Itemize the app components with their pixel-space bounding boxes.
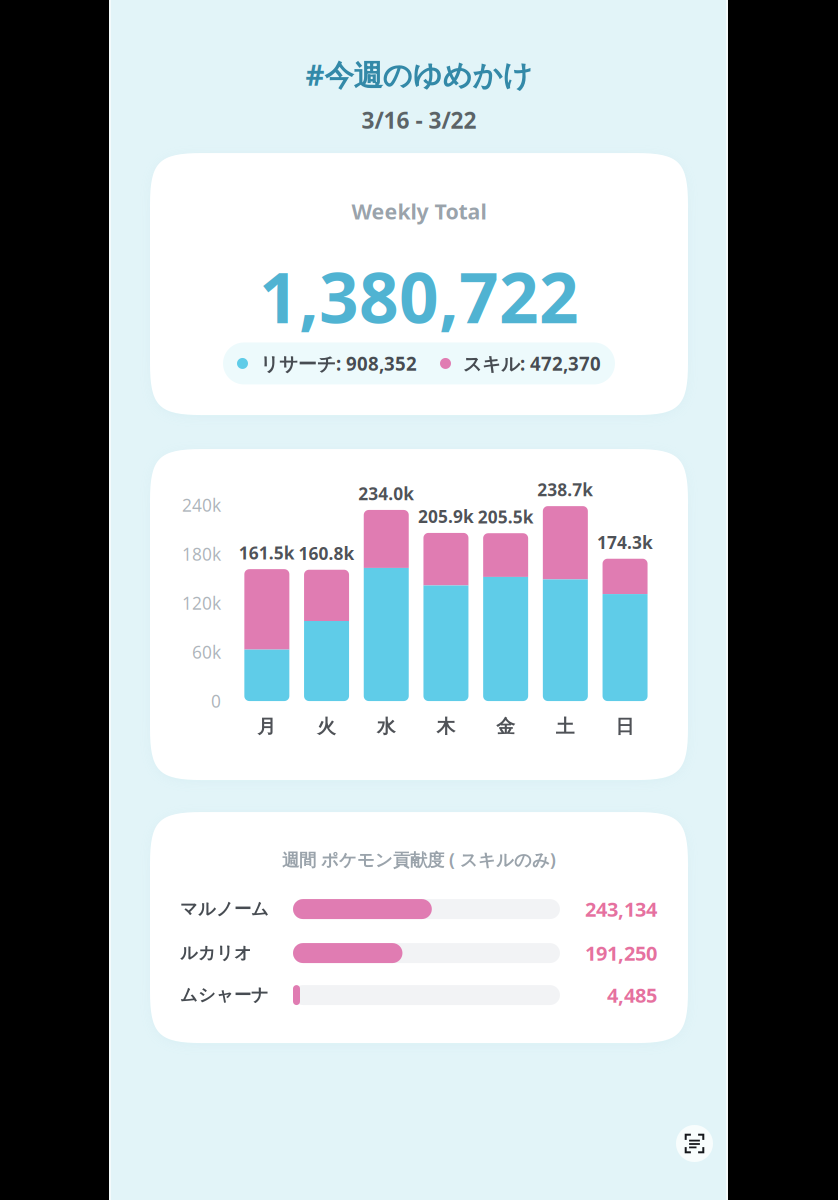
- staticText: 土: [556, 715, 575, 738]
- staticText: スキル: 472,370: [463, 351, 601, 376]
- button[interactable]: マルノーム: [150, 894, 688, 924]
- staticText: 161.5k: [239, 541, 295, 564]
- staticText: 205.9k: [418, 505, 474, 528]
- staticText: ムシャーナ: [180, 984, 269, 1006]
- staticText: リサーチ: 908,352: [260, 351, 417, 376]
- staticText: 238.7k: [537, 478, 593, 501]
- staticText: 火: [317, 715, 336, 738]
- staticText: 3/16 - 3/22: [361, 105, 476, 135]
- button[interactable]: ムシャーナ: [150, 980, 688, 1010]
- staticText: 4,485: [607, 982, 657, 1008]
- staticText: 191,250: [585, 940, 657, 966]
- staticText: 120k: [182, 591, 221, 614]
- staticText: マルノーム: [180, 898, 269, 920]
- staticText: 240k: [182, 493, 221, 516]
- staticText: Weekly Total: [351, 197, 486, 225]
- button[interactable]: ルカリオ: [150, 938, 688, 968]
- staticText: 234.0k: [358, 482, 414, 505]
- staticText: 174.3k: [597, 531, 653, 554]
- staticText: 水: [377, 715, 396, 738]
- staticText: 160.8k: [299, 542, 355, 565]
- staticText: 0: [211, 689, 221, 712]
- staticText: 180k: [182, 542, 221, 565]
- staticText: 日: [616, 715, 635, 738]
- button[interactable]: Live Text: [676, 1125, 713, 1162]
- staticText: 60k: [192, 640, 221, 663]
- staticText: 205.5k: [478, 505, 534, 528]
- staticText: 木: [436, 715, 455, 738]
- staticText: 週間 ポケモン貢献度 ( スキルのみ): [282, 848, 556, 871]
- staticText: 1,380,722: [259, 250, 579, 342]
- staticText: 月: [257, 715, 276, 738]
- staticText: ルカリオ: [180, 942, 252, 964]
- staticText: #今週のゆめかけ: [305, 55, 532, 94]
- staticText: 243,134: [585, 896, 657, 922]
- staticText: 金: [496, 715, 515, 738]
